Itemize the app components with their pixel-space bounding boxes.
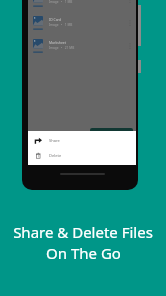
staticText: Image • 1 MB: [49, 0, 73, 4]
staticText: Image • 21 MB: [49, 46, 75, 50]
staticText: Marksheet: [49, 40, 66, 45]
button[interactable]: ID Card: [28, 12, 136, 34]
staticText: Image • 1 MB: [49, 23, 73, 27]
button[interactable]: Marksheet: [28, 35, 136, 57]
staticText: Share: [49, 138, 60, 143]
staticText: Delete: [49, 153, 62, 158]
staticText: On The Go: [46, 243, 121, 263]
button[interactable]: Delete: [28, 148, 136, 163]
button[interactable]: Share: [28, 133, 136, 148]
staticText: ID Card: [49, 17, 61, 22]
staticText: Share & Delete Files: [13, 222, 153, 242]
button[interactable]: Photo: [28, 0, 136, 11]
